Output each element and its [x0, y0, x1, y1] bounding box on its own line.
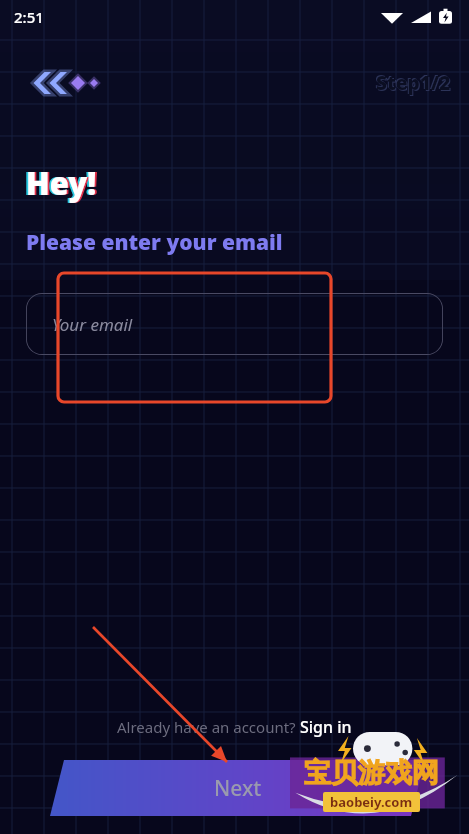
button[interactable]: Your email [26, 293, 443, 355]
staticText: 宝贝游戏网 [304, 756, 439, 790]
staticText: 2:51 [14, 7, 44, 27]
staticText: baobeiy.com [330, 793, 413, 811]
button[interactable]: Next [50, 760, 425, 816]
staticText: Step1/2 [377, 71, 452, 97]
staticText: Already have an account? [117, 717, 300, 737]
staticText: Step1/2 [375, 69, 450, 95]
staticText: Hey! [28, 162, 99, 204]
staticText: Next [214, 774, 262, 803]
staticText: Sign in [300, 716, 352, 738]
staticText: Step1/2 [376, 70, 451, 96]
staticText: Hey! [26, 162, 97, 204]
button[interactable]: Back [26, 68, 90, 98]
staticText: Please enter your email [26, 228, 283, 257]
button[interactable]: Already have an account? [0, 716, 469, 738]
staticText: Your email [52, 313, 133, 336]
staticText: Hey! [24, 162, 95, 204]
